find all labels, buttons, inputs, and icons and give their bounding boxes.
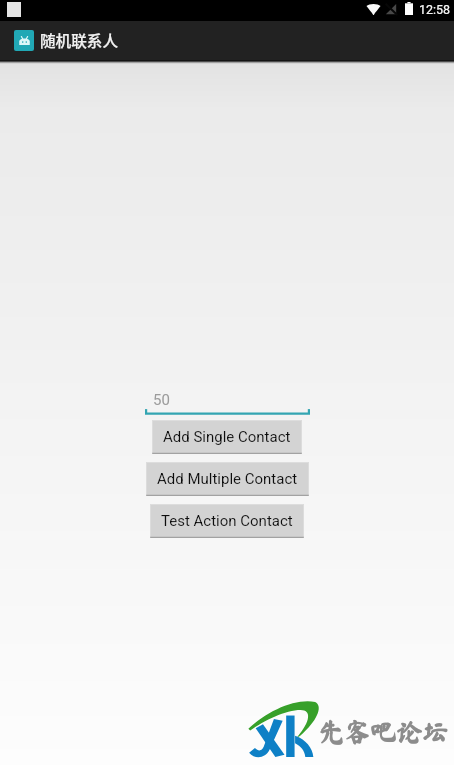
staticText: 12:58 xyxy=(419,2,451,17)
staticText: 随机联系人 xyxy=(40,29,118,52)
button[interactable]: 50 xyxy=(145,391,310,415)
staticText: Test Action Contact xyxy=(161,512,293,530)
button[interactable]: Test Action Contact xyxy=(150,504,304,538)
staticText: Add Single Contact xyxy=(163,428,291,446)
button[interactable]: Add Single Contact xyxy=(152,420,302,454)
staticText: 先客吧论坛 xyxy=(318,719,449,745)
staticText: 50 xyxy=(153,391,170,409)
button[interactable]: Add Multiple Contact xyxy=(146,462,309,496)
button[interactable]: App icon xyxy=(14,30,34,51)
staticText: Add Multiple Contact xyxy=(157,470,298,488)
